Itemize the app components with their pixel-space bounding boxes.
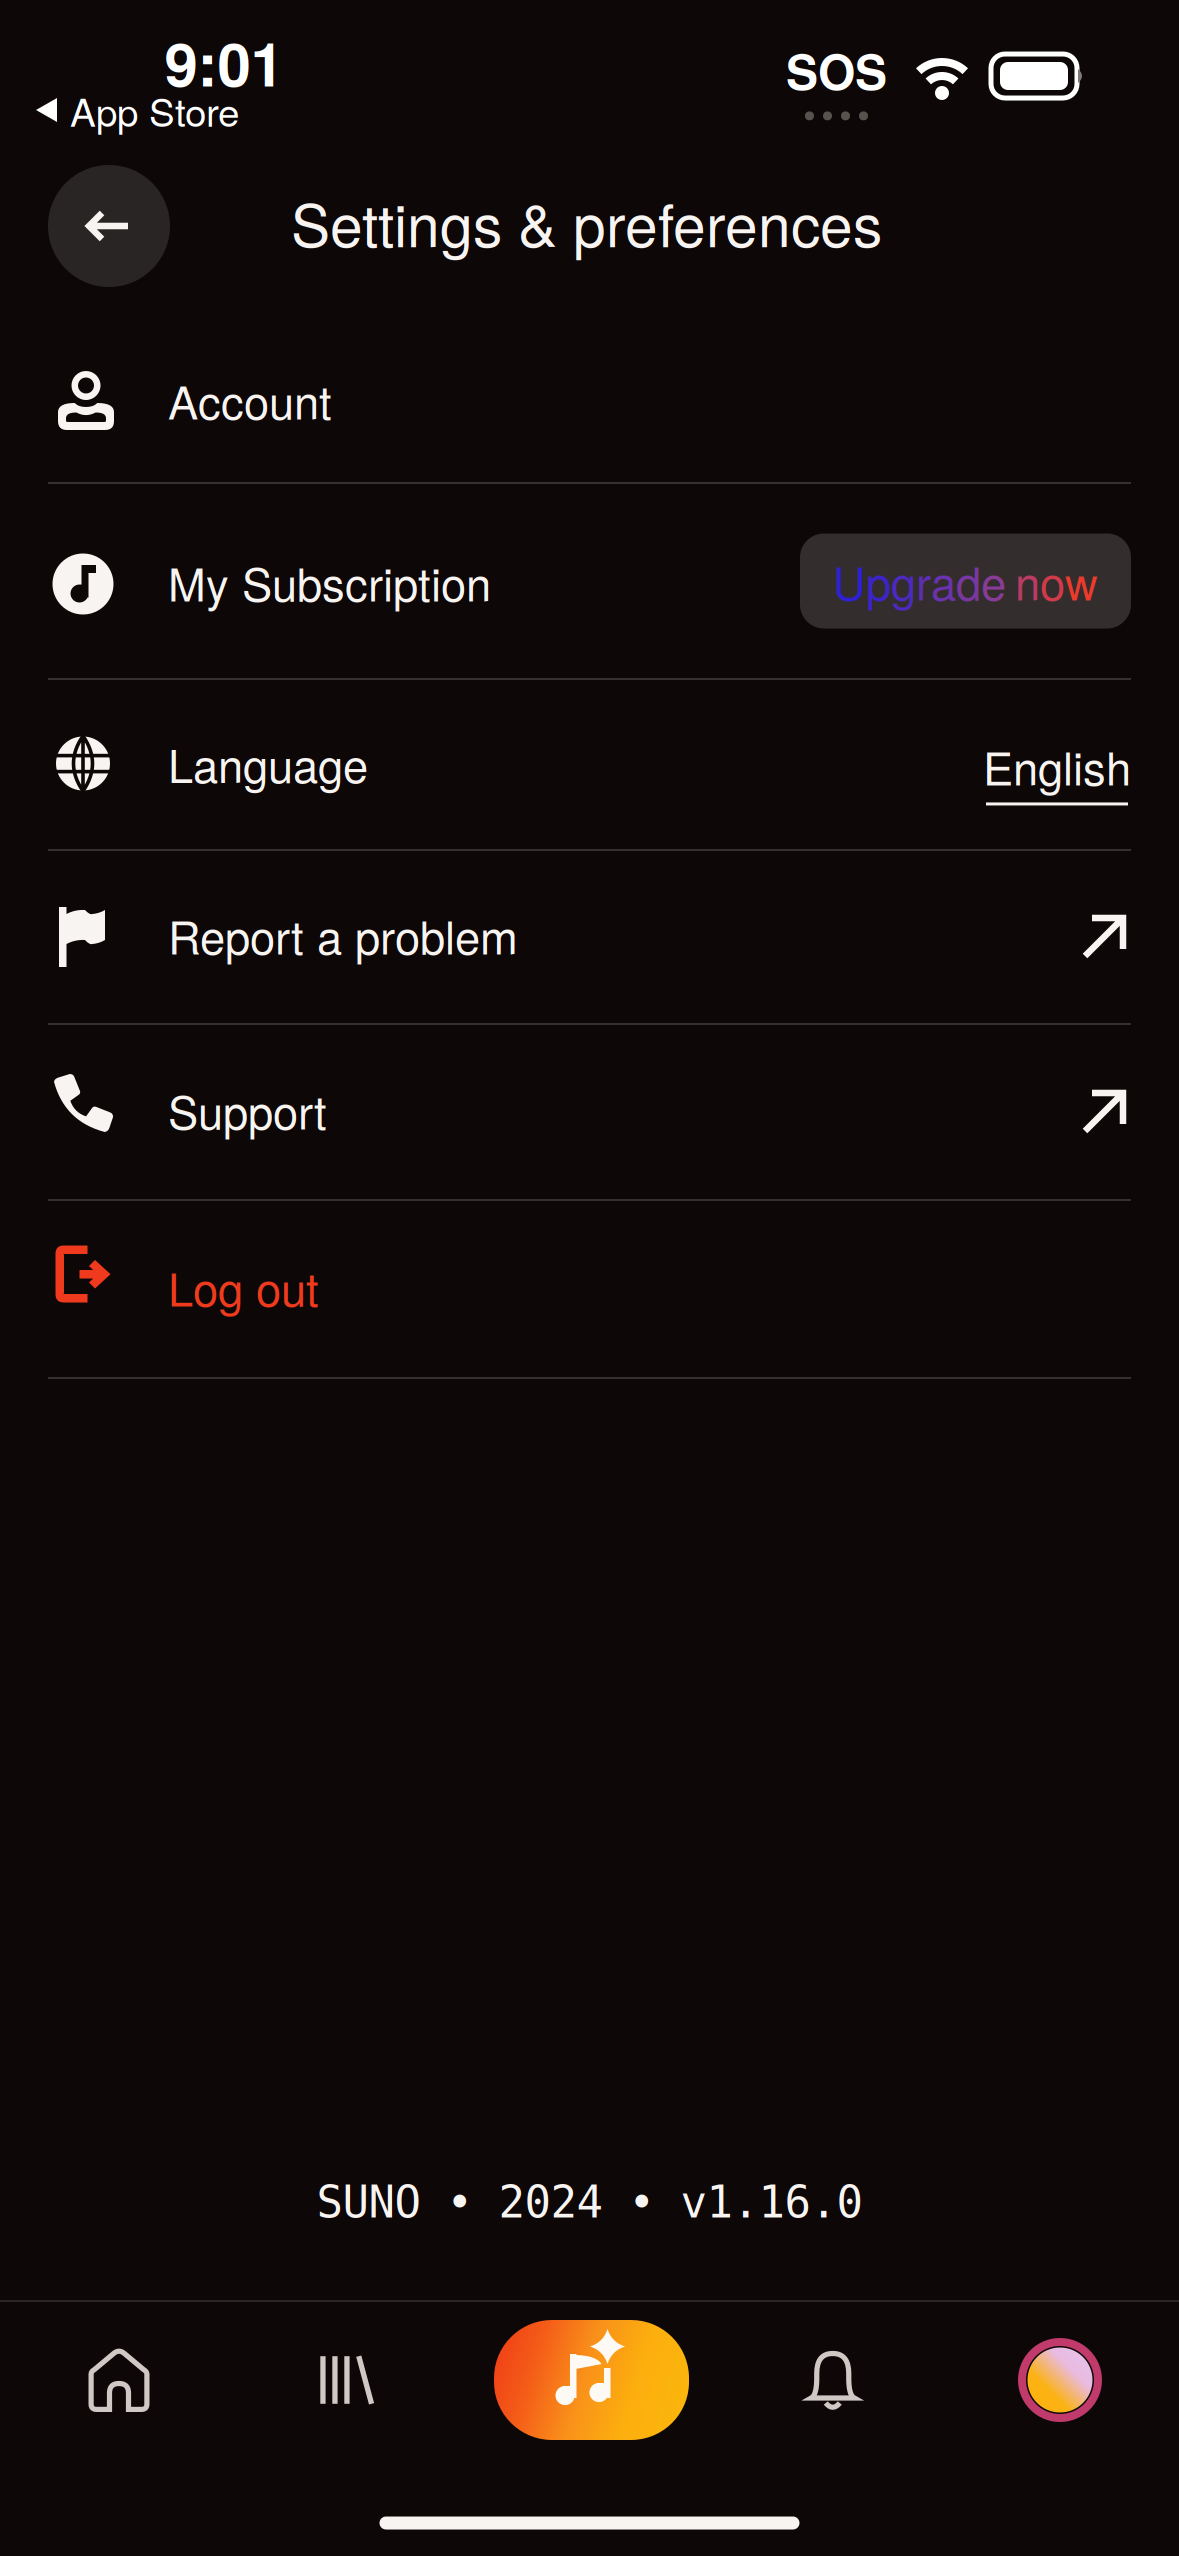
button[interactable]: Report a problem: [0, 851, 1179, 1025]
staticText: Report a problem: [168, 902, 518, 967]
staticText: e: [981, 548, 1006, 613]
staticText: n: [1015, 548, 1040, 613]
button[interactable]: Home: [41, 2302, 197, 2450]
button[interactable]: My Subscription: [0, 484, 1179, 680]
staticText: Account: [168, 367, 332, 432]
staticText: App Store: [70, 82, 239, 138]
button[interactable]: Notifications: [757, 2302, 913, 2450]
staticText: r: [916, 548, 931, 613]
button[interactable]: Account: [0, 316, 1179, 484]
staticText: Log out: [168, 1254, 319, 1319]
staticText: 9:01: [164, 19, 283, 105]
button[interactable]: Create: [491, 2302, 687, 2450]
button[interactable]: U: [800, 533, 1131, 628]
staticText: p: [866, 548, 891, 613]
staticText: g: [891, 548, 916, 613]
staticText: Support: [168, 1077, 327, 1142]
button[interactable]: Log out: [0, 1201, 1179, 1379]
staticText: U: [833, 548, 866, 613]
button[interactable]: Back: [48, 165, 170, 287]
staticText: SUNO • 2024 • v1.16.0: [316, 2177, 862, 2228]
staticText: a: [931, 548, 956, 613]
button[interactable]: Profile: [982, 2302, 1138, 2450]
staticText: Language: [168, 731, 368, 796]
staticText: w: [1065, 548, 1098, 613]
staticText: SOS: [786, 36, 887, 104]
button[interactable]: Language: [0, 680, 1179, 851]
staticText: d: [956, 548, 981, 613]
staticText: o: [1040, 548, 1065, 613]
staticText: English: [983, 733, 1131, 798]
staticText: Settings & preferences: [291, 180, 882, 264]
button[interactable]: Library: [266, 2302, 422, 2450]
staticText: My Subscription: [168, 549, 491, 614]
button[interactable]: Support: [0, 1025, 1179, 1201]
